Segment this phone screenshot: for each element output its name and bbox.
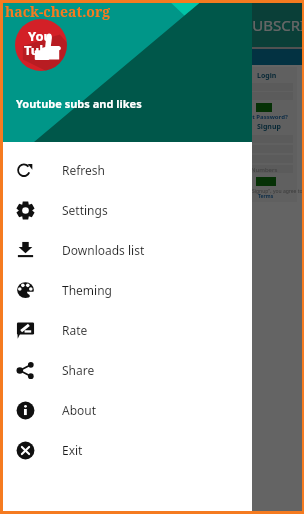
staticText: Exit	[62, 442, 83, 458]
staticText: Tube	[24, 41, 56, 59]
staticText: Settings	[62, 202, 108, 218]
staticText: By clicking "Signup", you agree to our	[224, 188, 304, 195]
staticText: About	[62, 402, 97, 418]
staticText: Terms	[258, 193, 274, 200]
button[interactable]: Settings	[0, 190, 252, 230]
staticText: Theming	[62, 282, 112, 298]
staticText: Numbers	[251, 166, 278, 174]
button[interactable]: Exit	[0, 430, 252, 470]
button[interactable]: Refresh	[0, 150, 252, 190]
staticText: Downloads list	[62, 242, 145, 258]
button[interactable]: Share	[0, 350, 252, 390]
staticText: Youtube subs and likes	[16, 96, 142, 111]
staticText: SUBSCRIBE	[244, 15, 304, 35]
staticText: You	[28, 27, 53, 45]
staticText: Share	[62, 362, 95, 378]
staticText: Refresh	[62, 162, 106, 178]
staticText: hack-cheat.org	[5, 2, 111, 21]
staticText: Forgot Password?	[235, 113, 288, 121]
button[interactable]: Rate	[0, 310, 252, 350]
staticText: Rate	[62, 322, 88, 338]
staticText: Login	[257, 71, 277, 81]
staticText: Signup	[257, 122, 281, 132]
button[interactable]: About	[0, 390, 252, 430]
button[interactable]: Downloads list	[0, 230, 252, 270]
button[interactable]: Theming	[0, 270, 252, 310]
